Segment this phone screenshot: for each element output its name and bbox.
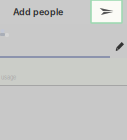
staticText: Add people <box>13 6 63 17</box>
staticText: usage <box>1 74 16 81</box>
button[interactable]: Send <box>91 0 122 23</box>
button[interactable]: Edit <box>116 42 124 51</box>
